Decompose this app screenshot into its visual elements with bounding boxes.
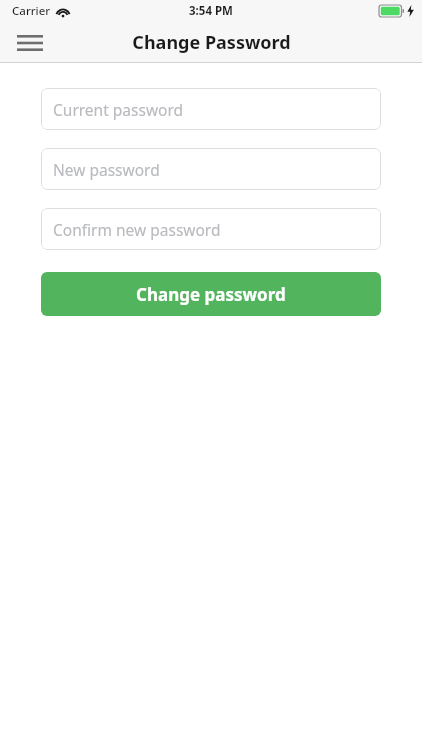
staticText: Confirm new password: [53, 219, 221, 240]
button[interactable]: Current password: [41, 88, 381, 130]
staticText: New password: [53, 159, 160, 180]
button[interactable]: New password: [41, 148, 381, 190]
staticText: Change Password: [132, 30, 291, 55]
staticText: Carrier: [12, 3, 51, 19]
staticText: Change password: [136, 283, 286, 306]
button[interactable]: Change password: [41, 272, 381, 316]
staticText: Current password: [53, 99, 184, 120]
staticText: 3:54 PM: [189, 3, 233, 19]
button[interactable]: Open navigation menu: [8, 22, 52, 63]
button[interactable]: Confirm new password: [41, 208, 381, 250]
